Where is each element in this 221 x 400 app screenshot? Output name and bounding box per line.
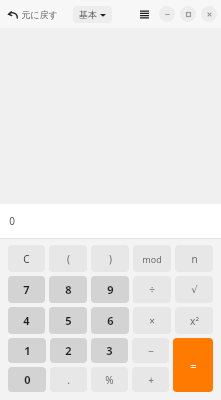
- button[interactable]: 9: [91, 276, 129, 303]
- button[interactable]: .: [50, 367, 87, 392]
- staticText: x²: [190, 314, 199, 328]
- button[interactable]: x²: [175, 307, 213, 334]
- staticText: (: [67, 252, 70, 266]
- button[interactable]: 5: [49, 307, 87, 334]
- button[interactable]: 8: [49, 276, 87, 303]
- button[interactable]: ): [91, 245, 129, 272]
- staticText: ÷: [149, 283, 155, 297]
- staticText: 元に戻す: [21, 9, 58, 20]
- staticText: 2: [65, 343, 72, 358]
- staticText: +: [148, 373, 154, 387]
- button[interactable]: ÷: [133, 276, 171, 303]
- button[interactable]: 0: [8, 367, 46, 392]
- button[interactable]: +: [132, 367, 169, 392]
- button[interactable]: 7: [8, 276, 45, 303]
- staticText: n: [191, 252, 198, 266]
- button[interactable]: 基本: [73, 6, 112, 23]
- staticText: 6: [107, 313, 114, 328]
- staticText: 3: [106, 343, 113, 358]
- staticText: %: [105, 373, 114, 387]
- button[interactable]: 元に戻す: [5, 6, 61, 23]
- button[interactable]: 4: [8, 307, 45, 334]
- staticText: ×: [149, 314, 155, 328]
- staticText: 1: [24, 343, 31, 358]
- staticText: √: [191, 284, 198, 296]
- button[interactable]: 3: [91, 338, 128, 363]
- button[interactable]: mod: [133, 245, 171, 272]
- button[interactable]: n: [175, 245, 213, 272]
- button[interactable]: =: [173, 338, 213, 392]
- staticText: 5: [65, 313, 72, 328]
- staticText: 9: [107, 282, 114, 297]
- button[interactable]: √: [175, 276, 213, 303]
- button[interactable]: C: [8, 245, 45, 272]
- button[interactable]: −: [132, 338, 169, 363]
- staticText: .: [67, 373, 70, 387]
- staticText: 8: [65, 282, 72, 297]
- button[interactable]: 2: [50, 338, 87, 363]
- button[interactable]: Close: [201, 6, 217, 22]
- staticText: 0: [24, 372, 31, 387]
- button[interactable]: 6: [91, 307, 129, 334]
- staticText: 7: [23, 282, 30, 297]
- button[interactable]: ×: [133, 307, 171, 334]
- staticText: C: [23, 252, 30, 266]
- staticText: 0: [9, 214, 15, 228]
- button[interactable]: %: [91, 367, 128, 392]
- button[interactable]: (: [49, 245, 87, 272]
- staticText: ): [109, 252, 112, 266]
- button[interactable]: Maximize: [180, 6, 196, 22]
- button[interactable]: 1: [8, 338, 46, 363]
- staticText: 基本: [79, 9, 97, 20]
- button[interactable]: Minimize: [159, 6, 175, 22]
- staticText: =: [190, 358, 197, 373]
- staticText: −: [148, 344, 154, 358]
- button[interactable]: Menu: [134, 4, 154, 24]
- staticText: mod: [142, 253, 162, 265]
- staticText: 4: [23, 313, 30, 328]
